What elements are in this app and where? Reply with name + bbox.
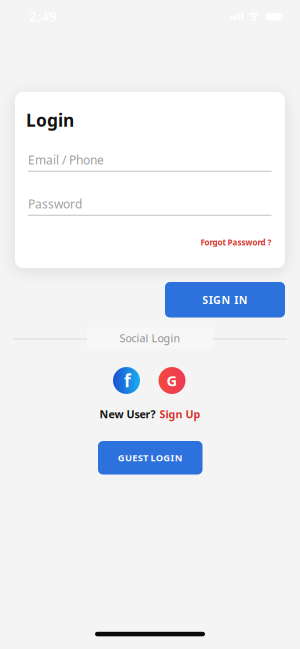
staticText: Sign Up [159, 407, 200, 421]
staticText: SIGN IN [202, 293, 248, 307]
button[interactable]: Sign Up [159, 407, 200, 421]
staticText: GUEST LOGIN [118, 452, 183, 464]
staticText: Email / Phone [28, 152, 104, 168]
button[interactable]: Password [28, 188, 271, 216]
button[interactable]: Forgot Password ? [200, 237, 271, 248]
staticText: New User? [99, 407, 155, 421]
button[interactable]: Email / Phone [28, 144, 271, 172]
staticText: G [166, 371, 177, 390]
button[interactable]: Sign in with Facebook [113, 367, 140, 394]
button[interactable]: SIGN IN [165, 282, 285, 317]
staticText: Forgot Password ? [200, 237, 271, 248]
staticText: 2:49 [29, 7, 57, 25]
staticText: Password [28, 196, 82, 212]
button[interactable]: GUEST LOGIN [98, 441, 202, 474]
button[interactable]: Sign in with Google [158, 367, 185, 394]
staticText: f [124, 369, 131, 392]
staticText: Login [26, 108, 74, 131]
staticText: Social Login [119, 331, 180, 345]
